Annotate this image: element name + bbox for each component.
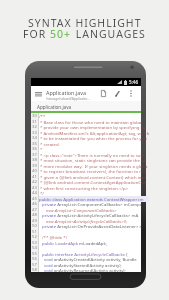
staticText: 5:46: [129, 79, 139, 85]
staticText: * to be instantiated for you when the pr…: [40, 135, 147, 141]
staticText: * <p class="note">There is normally no n…: [40, 152, 146, 158]
staticText: void onActivityResumed(Activity activity…: [44, 267, 126, 273]
staticText: * AndroidManifest.xml's &lt;application&…: [40, 130, 150, 136]
staticText: * provide your own implementation by spe…: [40, 124, 146, 130]
staticText: /storage/sdcard/Applicatio...: [46, 96, 90, 100]
staticText: void onActivityStarted(Activity activity…: [44, 262, 122, 268]
staticText: 43: [32, 185, 37, 191]
staticText: 41: [32, 174, 37, 180]
staticText: 49: [32, 218, 37, 224]
staticText: private ArrayList<OnProvideAssistDataLis…: [42, 223, 144, 229]
button[interactable]: Edit: [111, 86, 123, 101]
staticText: new ArrayList<ActivityLifecycleCallbacks…: [46, 218, 128, 224]
staticText: 35: [32, 141, 37, 147]
staticText: 33: [32, 130, 37, 136]
staticText: * more modular way. If your singleton ne…: [40, 163, 148, 169]
staticText: void onActivityCreated(Activity activity…: [44, 256, 137, 262]
staticText: 57: [32, 262, 37, 268]
staticText: * {@link android.content.Context#getAppl…: [40, 179, 147, 185]
staticText: /** @hide */: [42, 234, 68, 240]
staticText: 40: [32, 168, 37, 174]
staticText: * Base class for those who need to maint…: [40, 119, 143, 125]
staticText: 34: [32, 135, 37, 141]
staticText: * created.: [40, 141, 60, 147]
staticText: 56: [32, 256, 37, 262]
staticText: 45: [32, 196, 37, 202]
staticText: 44: [32, 190, 37, 196]
staticText: 58: [32, 267, 37, 273]
staticText: 39: [32, 163, 37, 169]
staticText: public class Application extends Context…: [39, 196, 144, 202]
staticText: SYNTAX HIGHLIGHT: [28, 16, 142, 30]
button[interactable]: More options: [125, 86, 137, 101]
staticText: 37: [32, 152, 37, 158]
button[interactable]: Application.java: [31, 101, 66, 111]
staticText: 50+: [50, 27, 72, 41]
staticText: 47: [32, 207, 37, 213]
staticText: LANGUAGES: [72, 27, 146, 41]
staticText: *: [40, 146, 43, 152]
staticText: 38: [32, 157, 37, 163]
staticText: Application.java: [37, 104, 72, 110]
staticText: 52: [32, 234, 37, 240]
staticText: * given a {@link android.content.Context…: [40, 174, 146, 180]
staticText: private ArrayList<ActivityLifecycleCallb…: [42, 212, 139, 218]
staticText: 32: [32, 124, 37, 130]
button[interactable]: New document: [97, 86, 109, 101]
staticText: private ArrayList<ComponentCallbacks> mC…: [42, 201, 145, 207]
staticText: 53: [32, 240, 37, 246]
staticText: 55: [32, 251, 37, 257]
staticText: 31: [32, 119, 37, 125]
staticText: 50: [32, 223, 37, 229]
staticText: FOR: [23, 27, 50, 41]
staticText: 51: [32, 229, 37, 235]
staticText: 42: [32, 179, 37, 185]
staticText: new ArrayList<ComponentCallbacks>: [46, 207, 117, 213]
staticText: * when first constructing the singleton.…: [40, 185, 129, 191]
staticText: */: [40, 190, 44, 196]
staticText: Application.java: [46, 89, 87, 96]
staticText: 48: [32, 212, 37, 218]
staticText: 30: [32, 113, 37, 119]
staticText: * to register broadcast receivers), the …: [40, 168, 145, 174]
button[interactable]: Navigation drawer: [32, 86, 44, 101]
staticText: 36: [32, 146, 37, 152]
staticText: 54: [32, 245, 37, 251]
staticText: /**: [39, 113, 46, 119]
staticText: * most situation, static singletons can …: [40, 157, 146, 163]
staticText: public LoadedApk mLoadedApk;: [42, 240, 107, 246]
staticText: 46: [32, 201, 37, 207]
staticText: public interface ActivityLifecycleCallba…: [42, 251, 128, 257]
